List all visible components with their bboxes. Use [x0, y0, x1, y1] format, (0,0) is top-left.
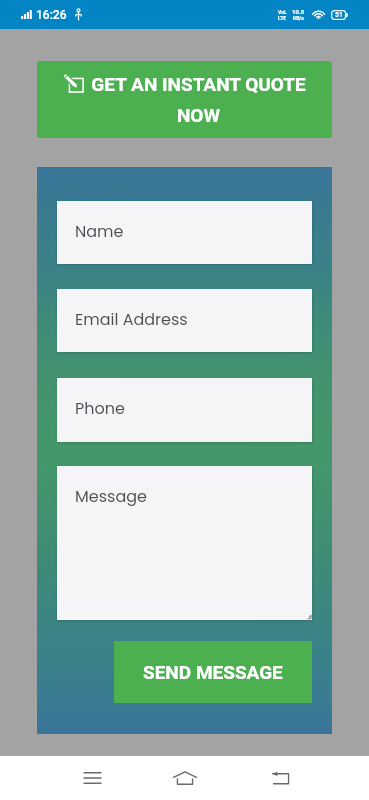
- button[interactable]: Get an instant quote: [37, 61, 332, 138]
- button[interactable]: Recent apps: [69, 756, 116, 800]
- staticText: 16:26: [36, 8, 67, 22]
- staticText: Name: [75, 220, 124, 242]
- staticText: Message: [75, 485, 147, 507]
- staticText: 51: [335, 11, 343, 19]
- other: Get an instant quote: [64, 73, 84, 93]
- button[interactable]: Name: [57, 201, 312, 264]
- staticText: SEND MESSAGE: [143, 661, 283, 683]
- staticText: LTE: [278, 15, 287, 21]
- button[interactable]: Phone: [57, 378, 312, 442]
- button[interactable]: Home: [161, 756, 209, 800]
- button[interactable]: Back: [257, 756, 305, 800]
- staticText: KB/s: [293, 15, 304, 21]
- staticText: Phone: [75, 397, 125, 419]
- staticText: GET AN INSTANT QUOTE NOW: [91, 73, 306, 126]
- staticText: 10.8: [292, 8, 305, 15]
- staticText: VoL: [278, 9, 287, 15]
- staticText: Email Address: [75, 308, 188, 330]
- button[interactable]: Message: [57, 466, 312, 620]
- button[interactable]: Email Address: [57, 289, 312, 352]
- button[interactable]: SEND MESSAGE: [114, 641, 312, 703]
